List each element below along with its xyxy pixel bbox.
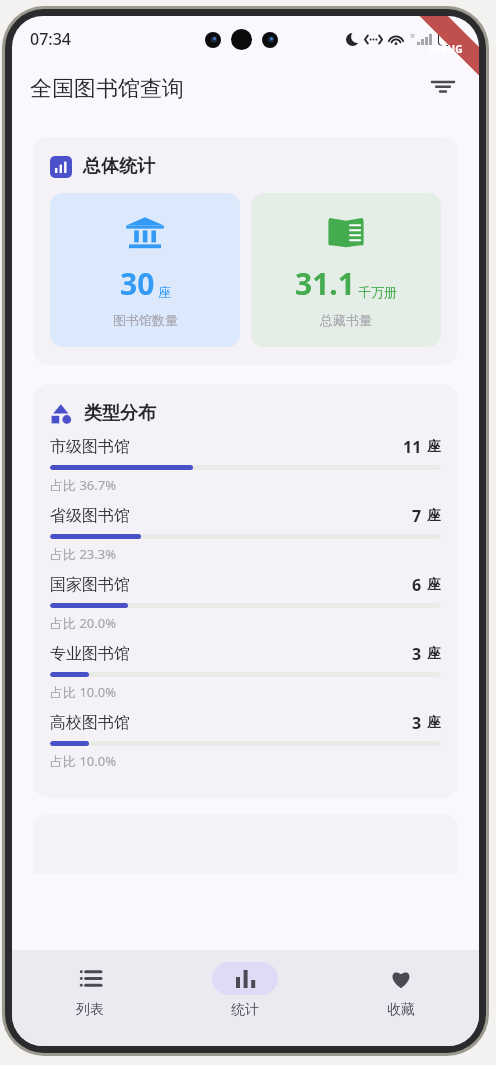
staticText: 30 [120,263,155,304]
staticText: 千万册 [358,284,397,300]
button[interactable]: List [12,958,167,1019]
staticText: 座 [427,507,441,525]
staticText: 7 [412,505,422,527]
button[interactable]: 30 [50,193,240,347]
staticText: DEBUG [428,42,463,56]
staticText: 总藏书量 [320,312,372,328]
staticText: 总体统计 [83,155,155,178]
staticText: 07:34 [30,28,71,50]
staticText: 占比 23.3% [50,545,116,563]
button[interactable]: 类型分布 [33,384,458,798]
staticText: 座 [427,576,441,594]
button[interactable]: Favorites [323,958,479,1019]
button[interactable]: 总体统计 [33,137,458,365]
staticText: 31.1 [295,263,355,304]
staticText: 市级图书馆 [50,437,130,457]
button[interactable]: Statistics [167,958,323,1019]
staticText: 类型分布 [84,402,156,425]
staticText: 占比 36.7% [50,476,116,494]
button[interactable]: Filter [421,67,465,111]
staticText: × [410,29,416,41]
staticText: 高校图书馆 [50,713,130,733]
staticText: 3 [412,712,422,734]
staticText: 6 [412,574,422,596]
staticText: 座 [427,714,441,732]
staticText: 专业图书馆 [50,644,130,664]
staticText: 省级图书馆 [50,506,130,526]
staticText: 国家图书馆 [50,575,130,595]
staticText: 3 [412,643,422,665]
staticText: 收藏 [387,1001,415,1019]
staticText: 占比 20.0% [50,614,116,632]
staticText: 统计 [231,1001,259,1019]
staticText: 图书馆数量 [113,312,178,328]
staticText: 座 [427,438,441,456]
staticText: 全国图书馆查询 [30,75,184,103]
staticText: 11 [403,436,422,458]
staticText: 座 [158,284,171,300]
button[interactable]: 31.1 [251,193,441,347]
staticText: 占比 10.0% [50,683,116,701]
staticText: 列表 [76,1001,104,1019]
staticText: 座 [427,645,441,663]
staticText: 占比 10.0% [50,752,116,770]
staticText: 100 [445,34,459,45]
